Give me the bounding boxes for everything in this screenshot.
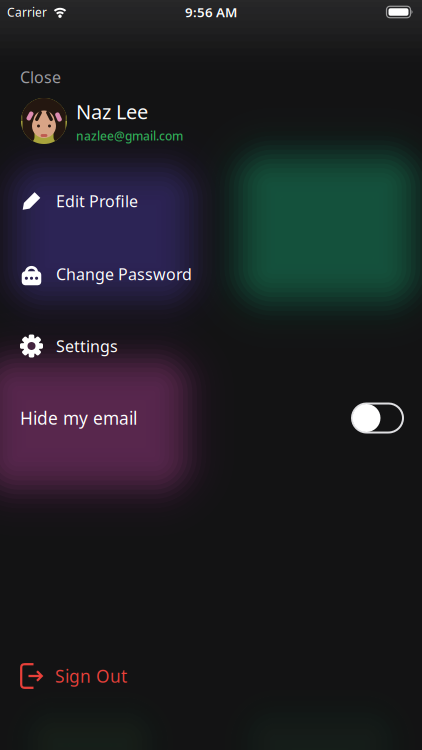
button[interactable]: Edit Profile	[0, 179, 422, 223]
staticText: Naz Lee	[76, 98, 148, 125]
staticText: 9:56 AM	[185, 3, 237, 21]
staticText: Edit Profile	[56, 190, 138, 212]
button[interactable]: Close	[0, 63, 422, 91]
staticText: Sign Out	[55, 664, 127, 687]
staticText: nazlee@gmail.com	[76, 128, 183, 144]
staticText: Settings	[56, 335, 118, 357]
staticText: Change Password	[56, 263, 192, 285]
button[interactable]: Change Password	[0, 252, 422, 296]
button[interactable]: Settings	[0, 324, 422, 368]
staticText: Close	[20, 66, 61, 88]
button[interactable]: Sign Out	[0, 654, 422, 698]
button[interactable]: Hide my email	[351, 402, 404, 433]
staticText: Carrier	[7, 4, 47, 20]
staticText: Hide my email	[20, 406, 137, 429]
